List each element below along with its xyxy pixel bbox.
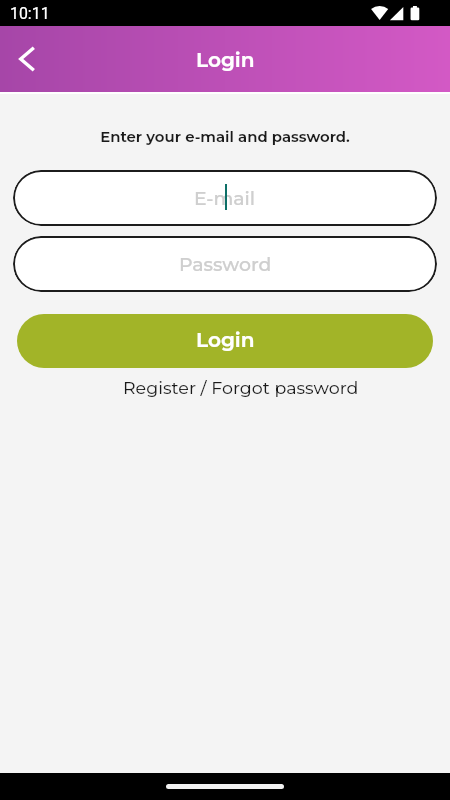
staticText: Enter your e-mail and password. (0, 128, 450, 146)
button[interactable]: Password (13, 236, 437, 292)
button[interactable]: Register / Forgot password (123, 377, 359, 398)
staticText: 10:11 (10, 4, 50, 23)
staticText: Login (196, 48, 255, 72)
button[interactable]: Back (0, 26, 52, 92)
staticText: Password (179, 253, 272, 276)
staticText: E-mail (194, 187, 256, 210)
button[interactable]: E-mail (13, 170, 437, 226)
button[interactable]: Login (17, 314, 433, 368)
staticText: Login (196, 328, 255, 352)
